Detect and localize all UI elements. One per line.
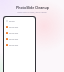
- button[interactable]: Recent: [6, 20, 33, 22]
- button[interactable]: Photo item: [6, 36, 33, 42]
- button[interactable]: Photo item: [6, 30, 33, 36]
- button[interactable]: Photo item: [6, 42, 33, 48]
- button[interactable]: Photo item: [6, 24, 33, 30]
- staticText: Photo item: [9, 38, 19, 40]
- staticText: PhotoSlide Cleanup: [16, 5, 49, 10]
- staticText: Recent: [9, 20, 15, 22]
- staticText: Photo item: [9, 32, 19, 34]
- staticText: Photo item: [9, 26, 19, 28]
- staticText: Swipe right to keep, left to delete: [17, 11, 47, 14]
- staticText: Photo item: [9, 44, 19, 46]
